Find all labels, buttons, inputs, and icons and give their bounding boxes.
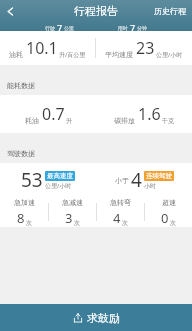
staticText: 7 [57, 22, 63, 31]
staticText: 能耗数据 [7, 81, 35, 90]
staticText: 驾驶数据 [7, 149, 35, 158]
staticText: 平均速度 [105, 50, 133, 59]
staticText: 次 [122, 219, 128, 227]
staticText: 升/百公里 [59, 51, 86, 59]
staticText: 分钟 [137, 25, 147, 31]
staticText: 次 [26, 219, 32, 227]
staticText: 碳排放 [114, 116, 135, 125]
staticText: 公里 [64, 25, 74, 31]
staticText: 历史行程 [154, 6, 186, 16]
staticText: 3 [65, 209, 73, 227]
staticText: 次 [170, 219, 176, 227]
staticText: 1.6 [138, 103, 161, 125]
staticText: 7 [130, 22, 136, 31]
button[interactable]: 历史行程 [151, 3, 189, 19]
staticText: 急转弯 [110, 198, 131, 207]
staticText: 行程报告 [74, 4, 118, 18]
staticText: 次 [74, 219, 80, 227]
staticText: 油耗 [9, 50, 23, 59]
staticText: 公里/小时 [156, 51, 183, 59]
staticText: 4 [113, 209, 121, 227]
staticText: 超速 [162, 198, 176, 207]
staticText: 公里/小时 [45, 182, 72, 190]
staticText: 小于 [115, 176, 129, 185]
staticText: 4 [131, 167, 142, 193]
staticText: 10.1 [26, 37, 58, 59]
staticText: 千克 [162, 117, 174, 125]
staticText: 23 [136, 37, 155, 59]
staticText: 8 [17, 209, 25, 227]
button[interactable]: 求鼓励 [0, 304, 192, 331]
staticText: 53 [21, 167, 43, 193]
staticText: 小时 [144, 182, 156, 190]
staticText: 耗油 [25, 116, 39, 125]
button[interactable]: 返回 [0, 1, 20, 21]
staticText: 0.7 [42, 103, 65, 125]
staticText: 升 [66, 117, 72, 125]
staticText: 用时 [118, 25, 128, 31]
staticText: 急减速 [62, 198, 83, 207]
staticText: 求鼓励 [87, 311, 120, 325]
staticText: 连续驾驶 [146, 172, 172, 180]
staticText: 0 [161, 209, 169, 227]
staticText: 行驶 [45, 25, 55, 31]
staticText: 急加速 [14, 198, 35, 207]
staticText: 最高速度 [47, 172, 73, 180]
